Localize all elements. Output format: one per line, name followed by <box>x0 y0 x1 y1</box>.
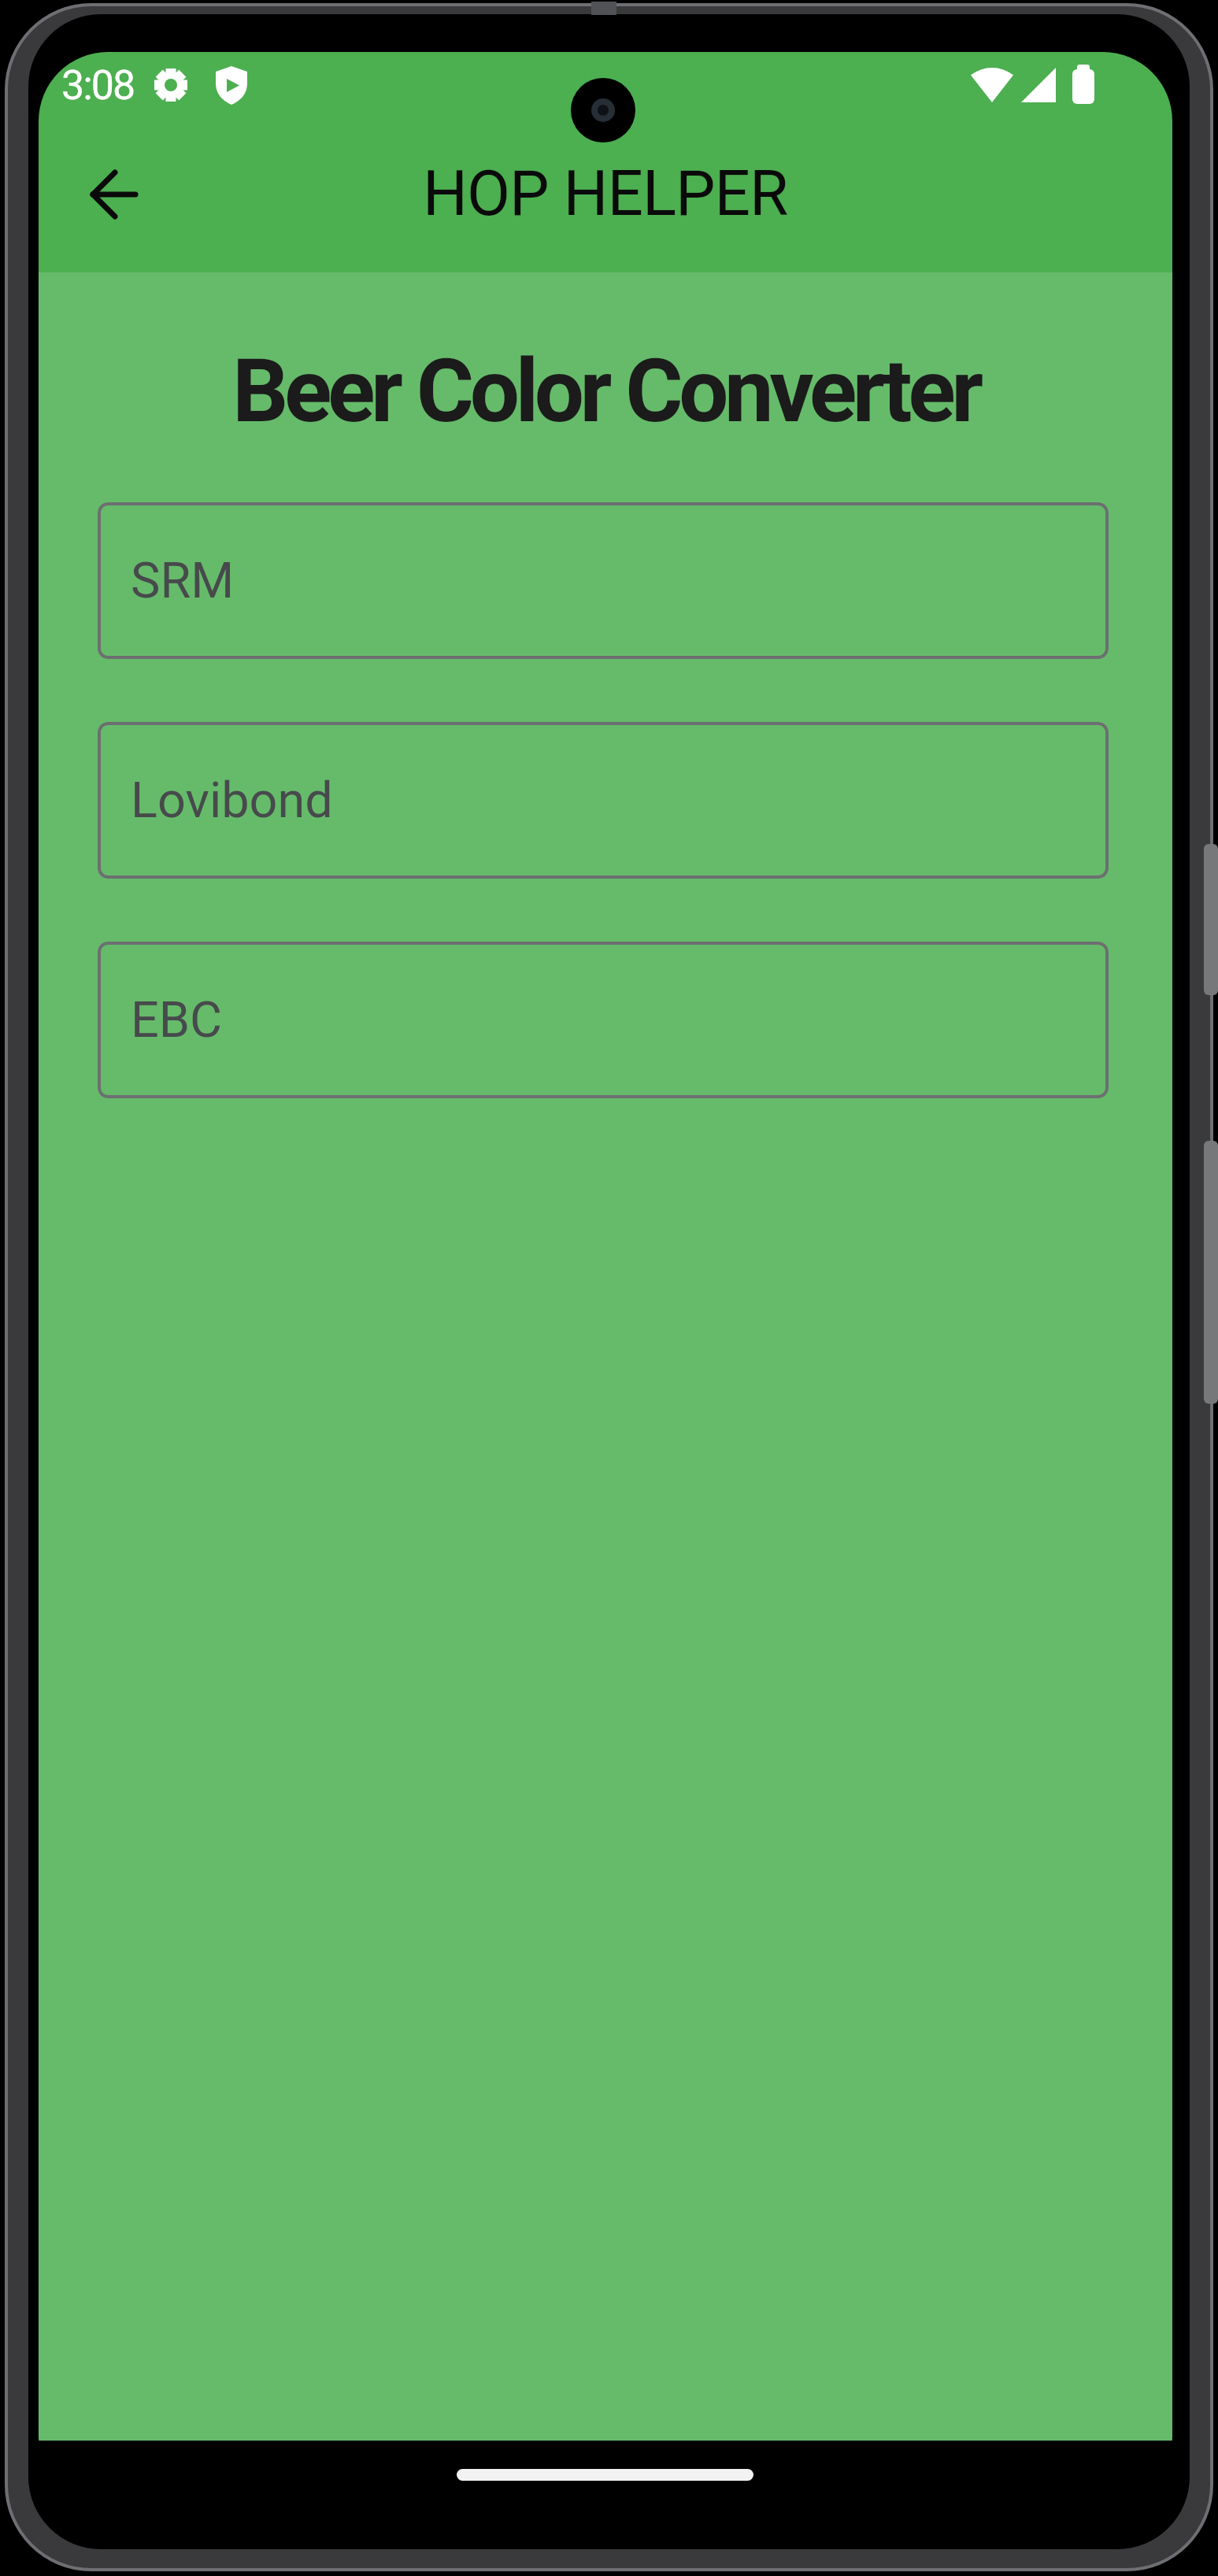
staticText: 3:08 <box>61 61 135 109</box>
staticText: SRM <box>131 552 235 610</box>
staticText: HOP HELPER <box>423 157 788 231</box>
button[interactable]: EBC <box>98 942 1109 1098</box>
button[interactable]: Lovibond <box>98 722 1109 879</box>
staticText: Beer Color Converter <box>232 339 979 442</box>
button[interactable]: SRM <box>98 502 1109 659</box>
button[interactable] <box>81 161 147 228</box>
staticText: EBC <box>131 991 223 1049</box>
staticText: Lovibond <box>131 772 333 830</box>
